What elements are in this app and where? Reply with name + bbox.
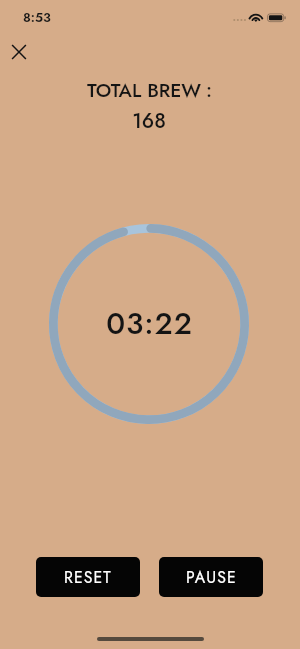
- button[interactable]: PAUSE: [159, 557, 263, 597]
- staticText: TOTAL BREW: [87, 76, 202, 104]
- staticText: 03:22: [106, 302, 193, 346]
- staticText: PAUSE: [186, 566, 237, 589]
- staticText: RESET: [64, 566, 112, 589]
- staticText: 168: [132, 106, 166, 135]
- staticText: 8:53: [23, 8, 51, 27]
- button[interactable]: Close: [5, 38, 33, 66]
- button[interactable]: RESET: [36, 557, 140, 597]
- staticText: :: [206, 76, 212, 104]
